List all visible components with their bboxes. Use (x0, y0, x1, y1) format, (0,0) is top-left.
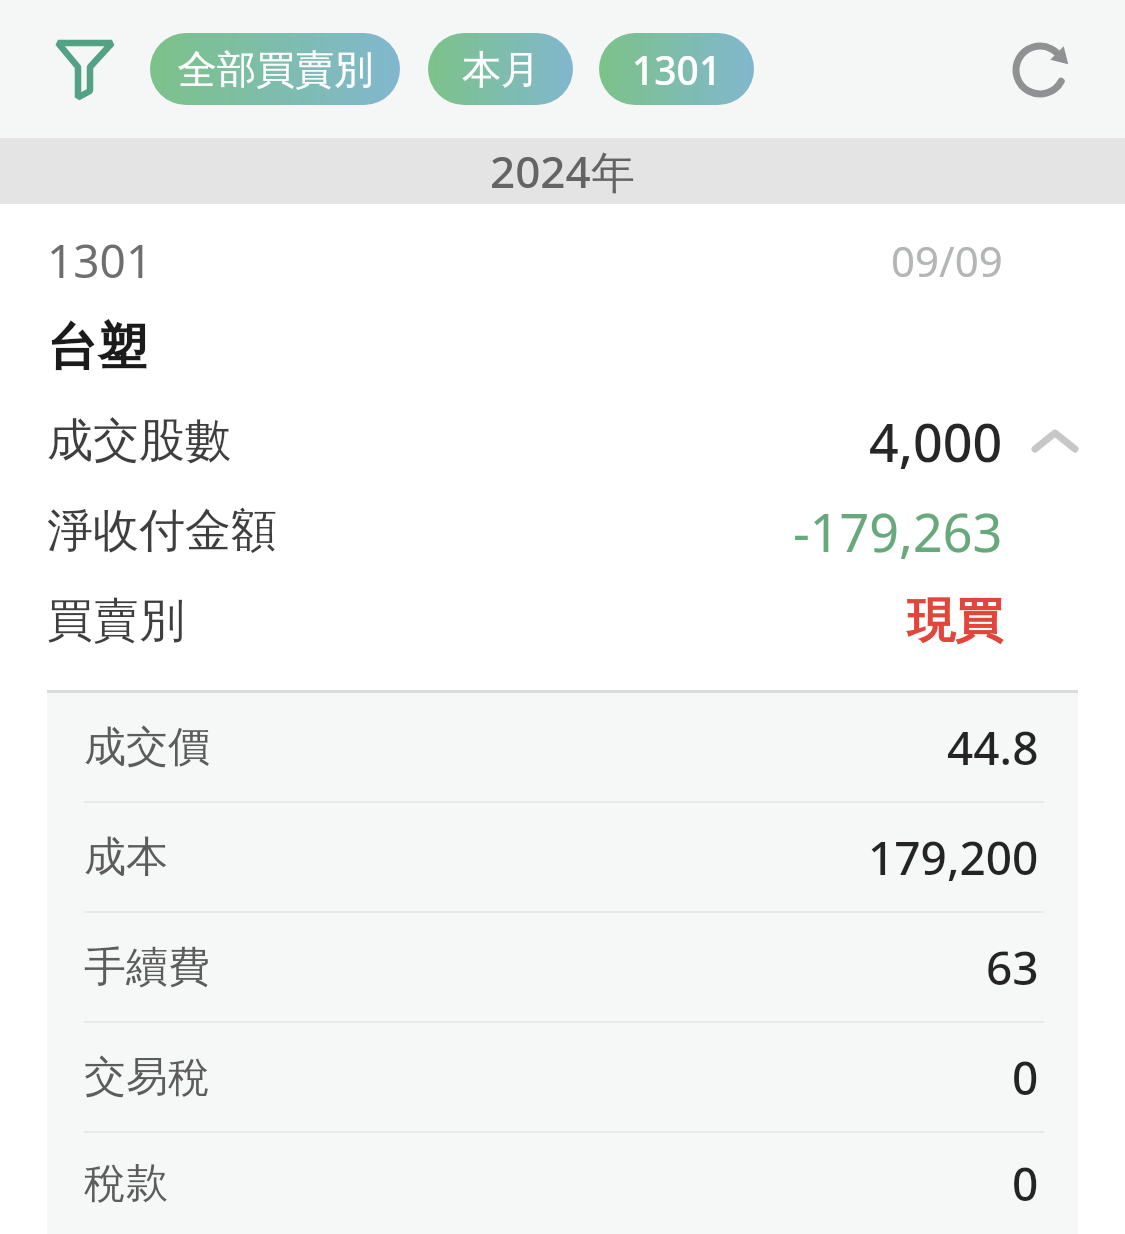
staticText: 63 (986, 936, 1039, 999)
staticText: 交易稅 (84, 1051, 210, 1104)
staticText: 1301 (47, 229, 153, 292)
button[interactable]: 1301 (599, 33, 754, 105)
staticText: 成交價 (84, 721, 210, 774)
staticText: 44.8 (947, 716, 1039, 779)
button[interactable] (55, 35, 117, 103)
staticText: 2024年 (490, 141, 635, 201)
button[interactable]: 本月 (428, 33, 573, 105)
staticText: 稅款 (84, 1157, 168, 1210)
staticText: 4,000 (869, 406, 1003, 477)
staticText: 買賣別 (47, 592, 185, 650)
staticText: 09/09 (891, 232, 1003, 289)
staticText: 本月 (462, 45, 540, 94)
staticText: 1301 (632, 43, 722, 96)
staticText: 成本 (84, 831, 168, 884)
button[interactable] (1012, 40, 1068, 98)
staticText: 淨收付金額 (47, 502, 277, 560)
button[interactable]: 成交股數 (47, 396, 1078, 486)
staticText: 0 (1012, 1152, 1039, 1215)
button[interactable]: 買賣別 (47, 576, 1078, 666)
staticText: 手續費 (84, 941, 210, 994)
button[interactable]: 全部買賣別 (150, 33, 400, 105)
staticText: 現買 (907, 591, 1003, 651)
staticText: -179,263 (793, 496, 1003, 567)
staticText: 0 (1012, 1046, 1039, 1109)
staticText: 成交股數 (47, 412, 231, 470)
button[interactable]: 淨收付金額 (47, 486, 1078, 576)
staticText: 179,200 (868, 826, 1039, 889)
staticText: 台塑 (47, 316, 147, 376)
staticText: 全部買賣別 (178, 45, 373, 94)
